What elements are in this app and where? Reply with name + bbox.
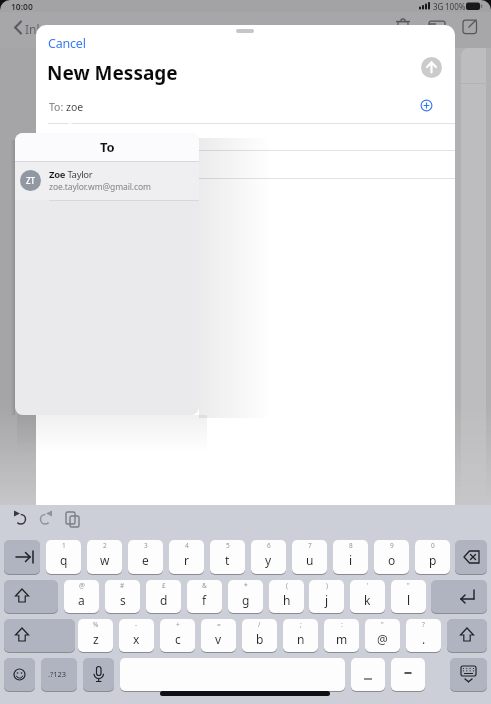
button[interactable]: 1 — [46, 540, 81, 574]
button[interactable] — [391, 658, 425, 691]
button[interactable] — [460, 16, 482, 36]
button[interactable]: ' — [350, 580, 385, 613]
staticText: d — [160, 592, 168, 608]
staticText: = — [217, 620, 221, 629]
button[interactable]: " — [365, 619, 400, 652]
button[interactable] — [431, 580, 487, 613]
staticText: v — [215, 631, 222, 647]
staticText: % — [93, 620, 99, 629]
button[interactable]: % — [78, 619, 113, 652]
staticText: x — [133, 631, 140, 647]
button[interactable]: * — [228, 580, 263, 613]
button[interactable]: 7 — [292, 540, 327, 574]
button[interactable]: & — [187, 580, 222, 613]
button[interactable]: 6 — [251, 540, 286, 574]
button[interactable]: 0 — [415, 540, 450, 574]
button[interactable]: / — [242, 619, 277, 652]
button[interactable]: ? — [406, 619, 441, 652]
button[interactable] — [426, 16, 448, 36]
button[interactable]: ZT — [15, 162, 199, 200]
staticText: w — [100, 552, 110, 568]
staticText: 6 — [267, 541, 271, 550]
staticText: .?123 — [48, 669, 67, 679]
staticText: s — [120, 592, 126, 608]
staticText: / — [258, 620, 261, 629]
button[interactable] — [420, 99, 433, 112]
staticText: q — [60, 552, 68, 568]
button[interactable] — [12, 18, 72, 38]
staticText: p — [429, 552, 437, 568]
staticText: 5 — [226, 541, 230, 550]
staticText: r — [184, 552, 189, 568]
button[interactable] — [392, 16, 414, 36]
staticText: ; — [300, 620, 302, 629]
staticText: h — [283, 592, 291, 608]
staticText: z — [93, 631, 99, 647]
staticText: ' — [367, 581, 369, 590]
button[interactable] — [62, 509, 84, 529]
button[interactable] — [455, 540, 487, 574]
staticText: 0 — [431, 541, 435, 550]
button[interactable] — [83, 658, 114, 691]
button[interactable]: 9 — [374, 540, 409, 574]
staticText: a — [78, 592, 85, 608]
button[interactable]: ) — [309, 580, 344, 613]
button[interactable] — [4, 619, 75, 652]
staticText: 3 — [144, 541, 148, 550]
button[interactable]: ; — [283, 619, 318, 652]
staticText: " — [407, 581, 410, 590]
staticText: zoe.taylor.wm@gmail.com — [49, 181, 151, 193]
button[interactable]: 5 — [210, 540, 245, 574]
staticText: Cancel — [48, 35, 86, 52]
staticText: £ — [162, 581, 166, 590]
button[interactable] — [450, 658, 487, 691]
staticText: & — [202, 581, 207, 590]
staticText: u — [306, 552, 314, 568]
staticText: * — [244, 581, 248, 590]
button[interactable]: 2 — [87, 540, 122, 574]
button[interactable] — [421, 57, 442, 78]
button[interactable]: 3 — [128, 540, 163, 574]
button[interactable] — [4, 540, 40, 574]
staticText: ZT — [26, 175, 36, 186]
staticText: 2 — [103, 541, 107, 550]
staticText: j — [325, 592, 329, 608]
button[interactable]: 4 — [169, 540, 204, 574]
button[interactable]: ( — [269, 580, 304, 613]
button[interactable] — [36, 509, 58, 529]
staticText: l — [407, 592, 411, 608]
button[interactable] — [4, 580, 58, 613]
staticText: 9 — [390, 541, 394, 550]
button[interactable] — [120, 658, 345, 691]
staticText: i — [349, 552, 353, 568]
button[interactable]: = — [201, 619, 236, 652]
staticText: 1 — [62, 541, 66, 550]
button[interactable]: + — [160, 619, 195, 652]
button[interactable] — [447, 619, 487, 652]
button[interactable]: # — [105, 580, 140, 613]
button[interactable]: : — [324, 619, 359, 652]
staticText: " — [381, 620, 384, 629]
staticText: To: — [49, 100, 64, 114]
button[interactable]: @ — [64, 580, 99, 613]
staticText: f — [202, 592, 207, 608]
button[interactable] — [351, 658, 385, 691]
button[interactable] — [4, 658, 35, 691]
staticText: - — [135, 620, 138, 629]
staticText: Zoe Taylor — [49, 168, 93, 181]
button[interactable] — [10, 509, 32, 529]
button[interactable]: £ — [146, 580, 181, 613]
staticText: y — [265, 552, 272, 568]
button[interactable] — [41, 658, 77, 691]
staticText: e — [142, 552, 149, 568]
button[interactable]: Cancel — [48, 35, 86, 52]
staticText: : — [341, 620, 343, 629]
staticText: . — [422, 631, 426, 647]
staticText: 3G — [433, 1, 444, 12]
staticText: ( — [286, 581, 288, 590]
button[interactable]: 8 — [333, 540, 368, 574]
button[interactable]: - — [119, 619, 154, 652]
button[interactable]: " — [391, 580, 426, 613]
staticText: k — [364, 592, 371, 608]
